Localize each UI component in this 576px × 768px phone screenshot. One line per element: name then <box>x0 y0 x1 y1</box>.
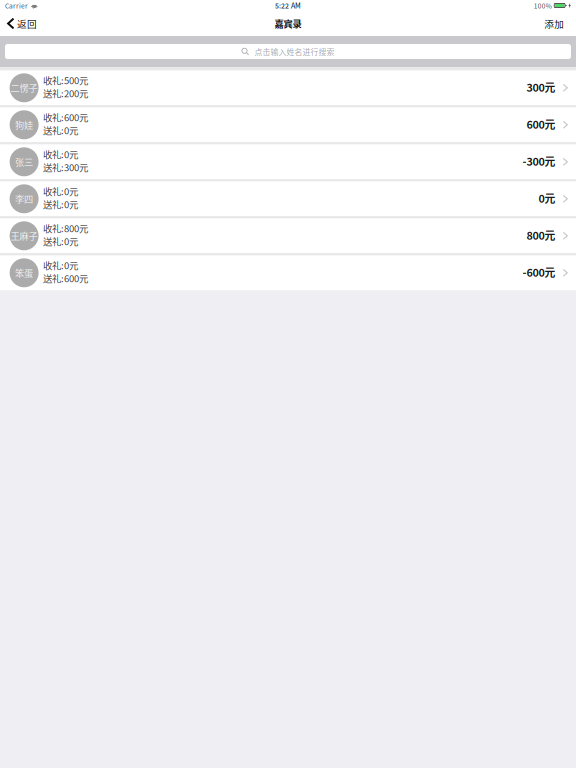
staticText: -600元 <box>523 264 556 280</box>
button[interactable]: 张三 <box>0 144 576 179</box>
staticText: 狗娃 <box>15 118 33 131</box>
button[interactable]: 点击输入姓名进行搜索 <box>0 36 576 67</box>
staticText: 送礼:0元 <box>43 123 78 137</box>
button[interactable]: 二愣子 <box>0 70 576 105</box>
staticText: 600元 <box>527 116 556 132</box>
staticText: 300元 <box>527 79 556 95</box>
staticText: 送礼:0元 <box>43 197 78 211</box>
staticText: 添加 <box>544 16 564 30</box>
staticText: 0元 <box>539 190 556 206</box>
staticText: 收礼:0元 <box>43 147 78 161</box>
staticText: 送礼:600元 <box>43 271 88 285</box>
staticText: 收礼:500元 <box>43 73 88 87</box>
button[interactable]: 添加 <box>533 11 576 36</box>
button[interactable]: 笨蛋 <box>0 255 576 290</box>
staticText: 笨蛋 <box>15 266 33 279</box>
staticText: 800元 <box>527 227 556 243</box>
staticText: 返回 <box>17 16 37 30</box>
staticText: 送礼:200元 <box>43 86 88 100</box>
staticText: 点击输入姓名进行搜索 <box>255 46 335 57</box>
staticText: 王麻子 <box>11 229 38 242</box>
button[interactable]: 返回 <box>0 11 47 36</box>
staticText: 送礼:0元 <box>43 234 78 248</box>
staticText: 送礼:300元 <box>43 160 88 174</box>
staticText: 张三 <box>15 155 33 168</box>
button[interactable]: 王麻子 <box>0 218 576 253</box>
staticText: -300元 <box>523 153 556 169</box>
staticText: 100% <box>534 1 552 10</box>
staticText: 收礼:800元 <box>43 221 88 235</box>
staticText: 5:22 AM <box>275 0 301 10</box>
staticText: 收礼:0元 <box>43 258 78 272</box>
staticText: 李四 <box>15 192 33 205</box>
staticText: 二愣子 <box>11 81 38 94</box>
button[interactable]: 狗娃 <box>0 107 576 142</box>
staticText: 收礼:600元 <box>43 110 88 124</box>
staticText: Carrier <box>5 1 28 10</box>
button[interactable]: 李四 <box>0 181 576 216</box>
staticText: 嘉宾录 <box>274 17 301 30</box>
staticText: 收礼:0元 <box>43 184 78 198</box>
